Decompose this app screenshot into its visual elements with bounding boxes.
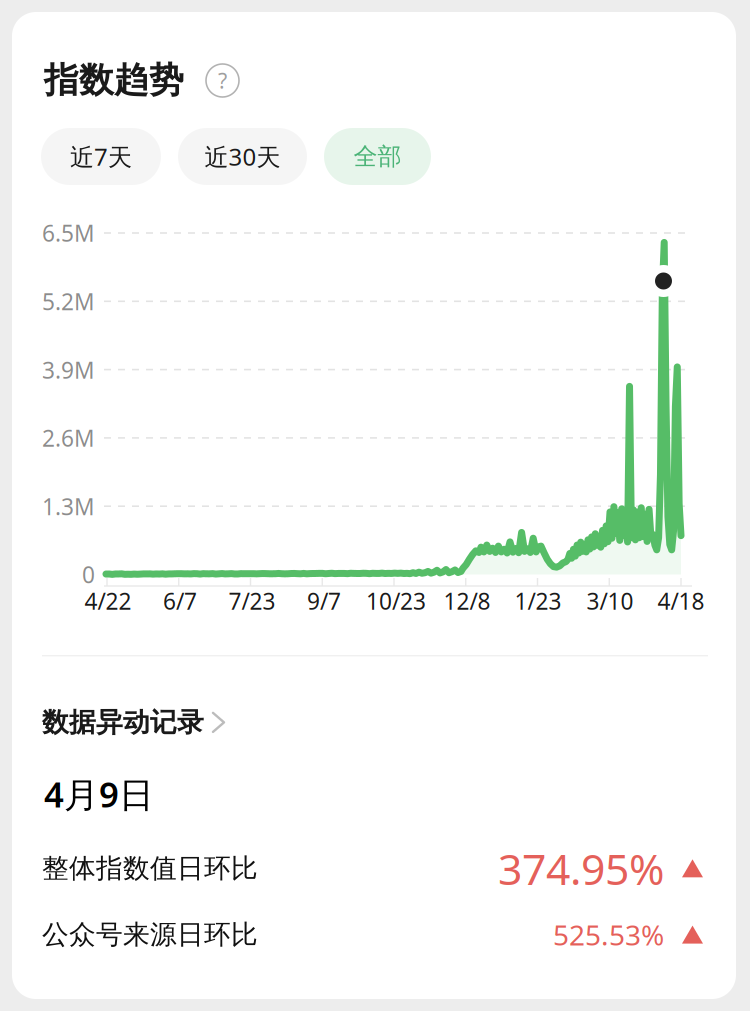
staticText: 1.3M bbox=[42, 491, 95, 521]
staticText: 近30天 bbox=[204, 141, 280, 172]
staticText: 4/22 bbox=[84, 586, 131, 616]
staticText: 整体指数值日环比 bbox=[42, 852, 258, 885]
button[interactable]: 近30天 bbox=[178, 128, 307, 185]
staticText: 12/8 bbox=[443, 586, 490, 616]
staticText: 数据异动记录 bbox=[42, 706, 204, 739]
staticText: 全部 bbox=[353, 142, 401, 171]
staticText: 1/23 bbox=[514, 586, 561, 616]
staticText: 3.9M bbox=[42, 355, 95, 385]
staticText: 6/7 bbox=[163, 586, 197, 616]
staticText: 指数趋势 bbox=[44, 59, 184, 102]
staticText: 4/18 bbox=[657, 586, 704, 616]
button[interactable]: 帮助 bbox=[206, 64, 239, 97]
button[interactable]: 近7天 bbox=[41, 128, 161, 185]
button[interactable]: 全部 bbox=[324, 128, 431, 185]
button[interactable]: 数据异动记录 bbox=[42, 706, 224, 739]
staticText: 9/7 bbox=[307, 586, 341, 616]
staticText: 公众号来源日环比 bbox=[42, 918, 258, 951]
staticText: 6.5M bbox=[42, 218, 95, 248]
staticText: 近7天 bbox=[70, 141, 132, 172]
staticText: 3/10 bbox=[586, 586, 633, 616]
staticText: ? bbox=[218, 66, 227, 95]
staticText: 7/23 bbox=[228, 586, 275, 616]
staticText: 374.95% bbox=[498, 840, 664, 897]
staticText: 4月9日 bbox=[44, 771, 154, 817]
staticText: 525.53% bbox=[553, 916, 664, 953]
staticText: 0 bbox=[82, 559, 95, 589]
staticText: 10/23 bbox=[366, 586, 426, 616]
staticText: 5.2M bbox=[42, 286, 95, 316]
staticText: 2.6M bbox=[42, 423, 95, 453]
